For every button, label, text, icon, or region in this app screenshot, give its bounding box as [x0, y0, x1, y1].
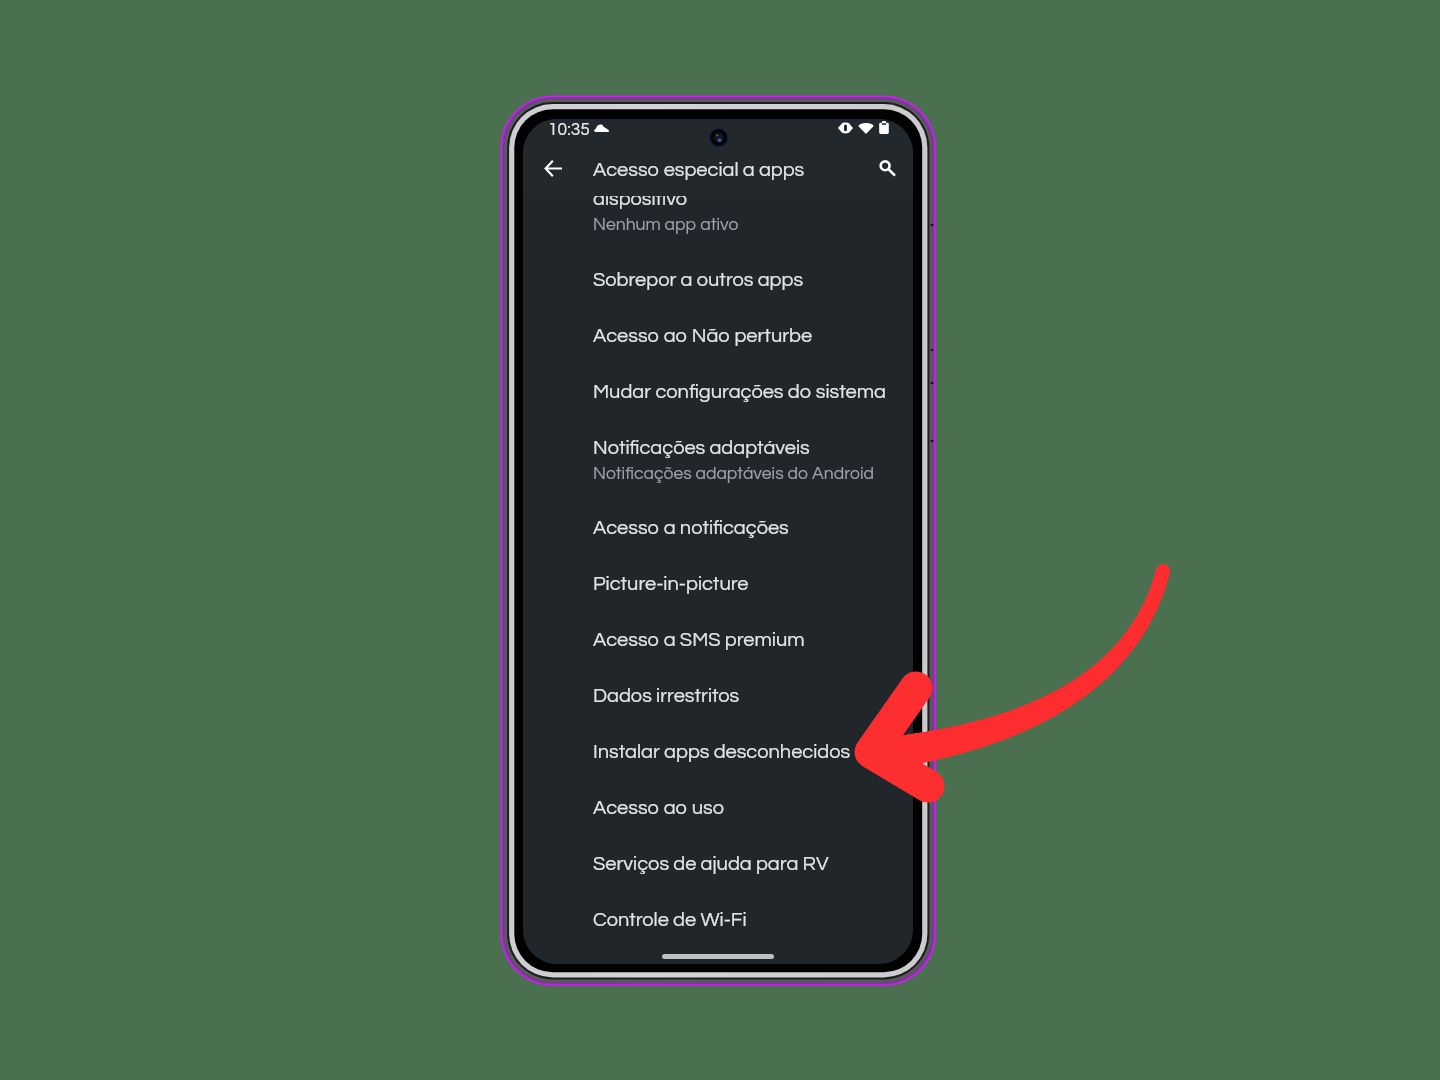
staticText: 10:35	[548, 121, 590, 139]
staticText: Notificações adaptáveis	[593, 438, 810, 459]
button[interactable]: Dados irrestritos	[523, 668, 913, 724]
button[interactable]: Acesso ao Não perturbe	[523, 308, 913, 364]
staticText: Nenhum app ativo	[593, 216, 739, 234]
button[interactable]: Pesquisar	[867, 148, 907, 188]
button[interactable]: Serviços de ajuda para RV	[523, 836, 913, 892]
staticText: Dados irrestritos	[593, 686, 740, 707]
staticText: Instalar apps desconhecidos	[593, 742, 851, 763]
staticText: Sobrepor a outros apps	[593, 270, 804, 291]
staticText: Notificações adaptáveis do Android	[593, 465, 874, 483]
staticText: Apps de administração do dispositivo	[593, 196, 829, 210]
button[interactable]: Voltar	[533, 148, 573, 188]
button[interactable]: Instalar apps desconhecidos	[523, 724, 913, 780]
button[interactable]: Sobrepor a outros apps	[523, 252, 913, 308]
staticText: Acesso a SMS premium	[593, 630, 805, 651]
button[interactable]: Acesso a notificações	[523, 500, 913, 556]
staticText: Serviços de ajuda para RV	[593, 854, 829, 875]
button[interactable]: Acesso ao uso	[523, 780, 913, 836]
staticText: Picture-in-picture	[593, 574, 749, 595]
button[interactable]: Notificações adaptáveis	[523, 420, 913, 500]
staticText: Acesso ao Não perturbe	[593, 326, 813, 347]
staticText: Acesso a notificações	[593, 518, 789, 539]
button[interactable]: Picture-in-picture	[523, 556, 913, 612]
button[interactable]: Controle de Wi-Fi	[523, 892, 913, 948]
button[interactable]: Acesso a SMS premium	[523, 612, 913, 668]
button[interactable]: Apps de administração do dispositivo	[523, 196, 913, 252]
button[interactable]: Mudar configurações do sistema	[523, 364, 913, 420]
staticText: Controle de Wi-Fi	[593, 910, 747, 931]
staticText: Mudar configurações do sistema	[593, 382, 886, 403]
staticText: Acesso especial a apps	[593, 160, 805, 181]
staticText: Acesso ao uso	[593, 798, 724, 819]
